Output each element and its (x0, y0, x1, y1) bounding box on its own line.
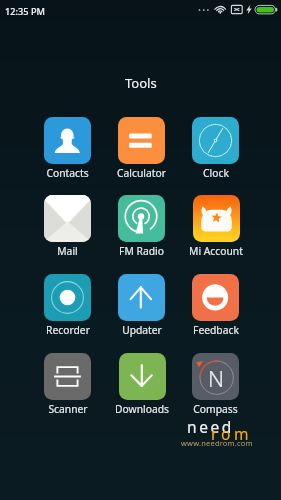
button[interactable]: Scanner (35, 353, 100, 416)
button[interactable]: Feedback (183, 274, 248, 337)
button[interactable]: Mail (35, 195, 100, 258)
button[interactable]: Downloads (109, 353, 174, 416)
staticText: Compass (193, 402, 238, 416)
button[interactable]: Updater (109, 274, 174, 337)
staticText: www.needrom.com (181, 438, 253, 448)
staticText: Contacts (46, 166, 89, 180)
staticText: Feedback (193, 323, 239, 337)
button[interactable]: Contacts (35, 117, 100, 180)
button[interactable]: Mi Account (183, 195, 248, 258)
staticText: Downloads (115, 402, 169, 416)
staticText: rom (211, 423, 253, 444)
staticText: Mail (57, 244, 78, 258)
staticText: FM Radio (119, 244, 164, 258)
staticText: 12:35 PM (5, 5, 45, 18)
staticText: need (187, 416, 234, 437)
staticText: Mi Account (189, 244, 243, 258)
staticText: Tools (125, 74, 157, 92)
button[interactable]: N (183, 353, 248, 416)
staticText: Clock (203, 166, 229, 180)
staticText: Calculator (117, 166, 166, 180)
button[interactable]: Clock (183, 117, 248, 180)
button[interactable]: FM Radio (109, 195, 174, 258)
staticText: Scanner (48, 402, 88, 416)
staticText: Updater (122, 323, 162, 337)
staticText: Recorder (46, 323, 90, 337)
staticText: N (208, 363, 225, 393)
button[interactable]: Calculator (109, 117, 174, 180)
button[interactable]: Recorder (35, 274, 100, 337)
